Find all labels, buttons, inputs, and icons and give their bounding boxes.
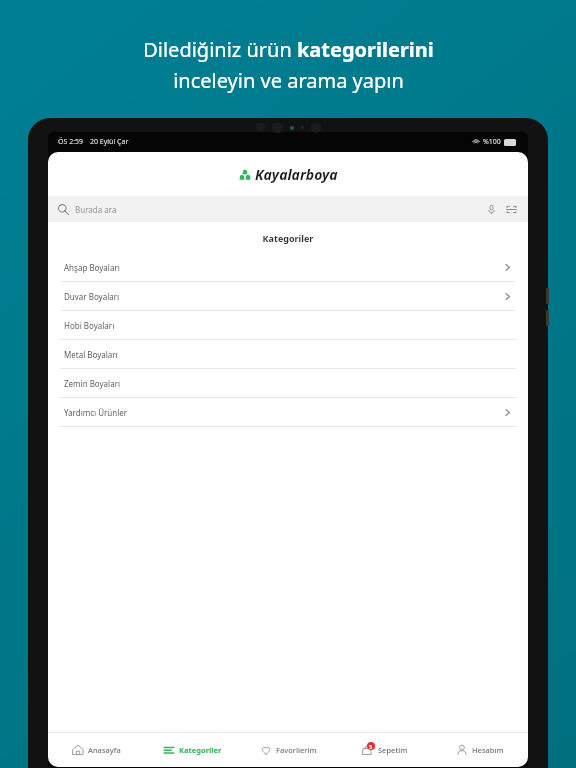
button[interactable]: Hobi Boyaları [48, 311, 528, 340]
staticText: 5 [369, 743, 373, 750]
staticText: Yardımcı Ürünler [64, 407, 128, 418]
staticText: Ahşap Boyaları [64, 262, 120, 273]
button[interactable]: Barkod tara [504, 202, 518, 216]
staticText: Favorilerim [276, 745, 317, 755]
button[interactable]: Anasayfa [48, 733, 144, 767]
button[interactable]: Favorilerim [240, 733, 336, 767]
staticText: Kategoriler [179, 745, 222, 755]
staticText: Zemin Boyaları [64, 378, 121, 389]
staticText: 20 Eylül Çar [90, 137, 129, 147]
button[interactable]: Duvar Boyaları [48, 282, 528, 311]
button[interactable]: Sesli arama [484, 202, 498, 216]
staticText: inceleyin ve arama yapın [173, 67, 404, 94]
staticText: Hesabım [472, 745, 504, 755]
staticText: Metal Boyaları [64, 349, 118, 360]
button[interactable]: Hesabım [432, 733, 528, 767]
staticText: Sepetim [378, 745, 408, 755]
staticText: Kategoriler [48, 232, 528, 244]
staticText: Hobi Boyaları [64, 320, 115, 331]
button[interactable]: Metal Boyaları [48, 340, 528, 369]
staticText: Kayalarboya [255, 165, 338, 184]
button[interactable]: 5 [336, 733, 432, 767]
button[interactable]: Burada ara [48, 196, 528, 222]
button[interactable]: Ahşap Boyaları [48, 253, 528, 282]
button[interactable]: Yardımcı Ürünler [48, 398, 528, 427]
staticText: Anasayfa [88, 745, 121, 755]
button[interactable]: Zemin Boyaları [48, 369, 528, 398]
staticText: %100 [483, 137, 501, 147]
staticText: Burada ara [75, 204, 117, 215]
staticText: Dilediğiniz ürün kategorilerini [143, 36, 434, 63]
staticText: Duvar Boyaları [64, 291, 120, 302]
button[interactable]: Kategoriler [144, 733, 240, 767]
staticText: ÖS 2:59 [58, 137, 84, 147]
